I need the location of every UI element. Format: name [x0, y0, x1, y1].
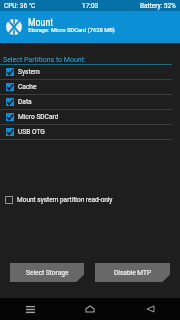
staticText: Select Partitions to Mount:	[3, 56, 86, 64]
button[interactable]: Back	[120, 298, 180, 320]
other: TWRP logo	[6, 19, 22, 35]
staticText: USB OTG	[18, 128, 45, 136]
staticText: System	[18, 68, 40, 76]
button[interactable]: USB OTG	[6, 125, 180, 139]
staticText: Disable MTP	[114, 269, 152, 277]
button[interactable]: Cache	[6, 80, 180, 94]
button[interactable]: Data	[6, 95, 180, 109]
staticText: Mount	[28, 17, 54, 29]
button[interactable]: Select Storage	[10, 263, 84, 282]
staticText: Cache	[18, 83, 37, 91]
button[interactable]: Recent apps	[0, 298, 60, 320]
button[interactable]: Mount system partition read-only	[5, 195, 180, 205]
staticText: Select Storage	[26, 269, 69, 277]
button[interactable]: Micro SDCard	[6, 110, 180, 124]
staticText: 17:03	[82, 2, 99, 10]
staticText: CPU: 36 °C	[4, 2, 36, 10]
staticText: Micro SDCard	[18, 113, 59, 121]
staticText: Mount system partition read-only	[17, 196, 113, 204]
staticText: Data	[18, 98, 32, 106]
button[interactable]: Home	[60, 298, 120, 320]
button[interactable]: System	[6, 65, 180, 79]
button[interactable]: Disable MTP	[95, 263, 170, 282]
staticText: Storage: Micro SDCard (7628 MB)	[28, 27, 115, 34]
staticText: Battery: 52%	[140, 2, 176, 10]
